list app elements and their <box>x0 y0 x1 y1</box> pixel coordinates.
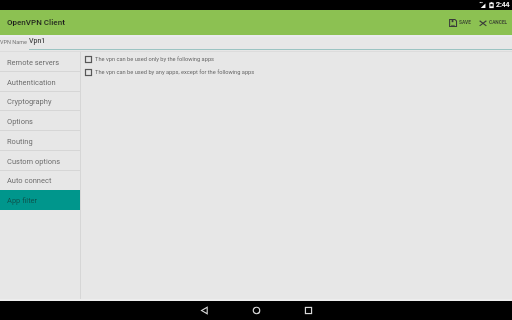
staticText: OpenVPN Client <box>7 18 65 27</box>
staticText: The vpn can be used by any apps, except … <box>95 69 255 76</box>
button[interactable]: The vpn can be used by any apps, except … <box>84 68 256 77</box>
staticText: The vpn can be used only by the followin… <box>95 56 215 63</box>
button[interactable]: Authentication <box>0 72 80 92</box>
button[interactable]: The vpn can be used only by the followin… <box>84 55 216 64</box>
staticText: Cryptography <box>7 97 52 106</box>
button[interactable]: Recent apps <box>286 301 330 320</box>
button[interactable]: Cryptography <box>0 91 80 111</box>
button[interactable]: Auto connect <box>0 170 80 190</box>
staticText: CANCEL <box>489 20 508 26</box>
staticText: Options <box>7 117 33 126</box>
staticText: Routing <box>7 137 33 146</box>
button[interactable]: Home <box>234 301 278 320</box>
staticText: SAVE <box>459 20 471 26</box>
button[interactable]: Remote servers <box>0 52 80 72</box>
staticText: Authentication <box>7 78 56 87</box>
staticText: 2:44 <box>496 1 510 9</box>
button[interactable]: CANCEL <box>477 15 510 31</box>
button[interactable]: Back <box>182 301 226 320</box>
staticText: Remote servers <box>7 58 60 67</box>
button[interactable]: Options <box>0 111 80 131</box>
button[interactable]: SAVE <box>447 15 473 31</box>
staticText: Auto connect <box>7 176 52 185</box>
button[interactable]: App filter <box>0 190 80 210</box>
staticText: Vpn1 <box>29 37 46 45</box>
staticText: App filter <box>7 196 38 205</box>
button[interactable]: Custom options <box>0 151 80 171</box>
staticText: VPN Name <box>0 39 27 45</box>
button[interactable]: Routing <box>0 131 80 151</box>
staticText: Custom options <box>7 157 61 166</box>
